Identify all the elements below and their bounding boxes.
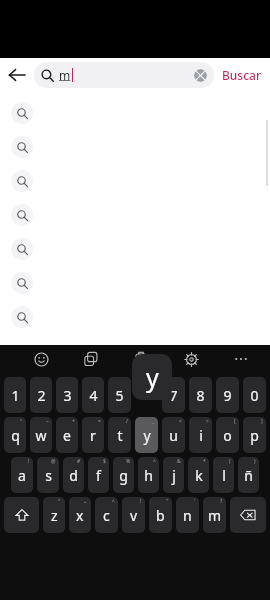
staticText: ! — [28, 458, 30, 465]
button[interactable]: Clipboard — [128, 346, 154, 372]
button[interactable]: / — [108, 417, 131, 453]
button[interactable]: ' — [176, 497, 199, 533]
button[interactable]: ⌃ — [43, 497, 65, 533]
button[interactable]: 1 — [4, 377, 26, 413]
button[interactable]: Search suggestion — [0, 164, 270, 198]
staticText: ~ — [46, 418, 49, 425]
staticText: 4 — [89, 386, 98, 405]
staticText: i — [199, 426, 203, 445]
staticText: ^ — [153, 458, 156, 465]
staticText: a — [18, 466, 26, 485]
button[interactable]: 0 — [243, 377, 266, 413]
button[interactable]: & — [163, 457, 184, 493]
staticText: o — [223, 426, 232, 445]
staticText: ⌄ — [83, 498, 88, 504]
button[interactable]: ? — [203, 497, 226, 533]
button[interactable]: ( — [213, 457, 234, 493]
button[interactable]: _ — [135, 417, 158, 453]
button[interactable]: ^ — [95, 497, 118, 533]
staticText: ! — [140, 498, 142, 505]
button[interactable]: Search suggestion — [0, 300, 270, 334]
button[interactable]: # — [63, 457, 84, 493]
button[interactable]: Search suggestion — [0, 96, 270, 130]
staticText: m — [59, 67, 71, 83]
staticText: > — [206, 418, 209, 425]
button[interactable]: < — [162, 417, 185, 453]
button[interactable]: ^ — [138, 457, 159, 493]
button[interactable]: Clear — [194, 69, 207, 82]
staticText: x — [76, 506, 84, 525]
button[interactable]: 4 — [82, 377, 104, 413]
button[interactable]: Emoji — [28, 346, 54, 372]
staticText: n — [183, 506, 192, 525]
staticText: [ — [234, 418, 236, 425]
button[interactable]: 3 — [56, 377, 78, 413]
button[interactable]: = — [82, 417, 104, 453]
button[interactable]: ) — [238, 457, 259, 493]
button[interactable]: Shift — [4, 497, 39, 533]
button[interactable]: ° — [4, 417, 26, 453]
button[interactable]: 8 — [189, 377, 212, 413]
staticText: w — [35, 426, 47, 445]
staticText: ( — [229, 458, 231, 465]
staticText: f — [96, 466, 101, 485]
staticText: ^ — [112, 498, 115, 505]
button[interactable]: Search suggestion — [0, 266, 270, 300]
button[interactable]: 2 — [30, 377, 52, 413]
button[interactable]: $ — [88, 457, 109, 493]
button[interactable]: Search suggestion — [0, 130, 270, 164]
button[interactable]: 5 — [108, 377, 131, 413]
staticText: r — [90, 426, 96, 445]
staticText: m — [208, 506, 222, 525]
button[interactable]: 9 — [216, 377, 239, 413]
button[interactable]: ~ — [30, 417, 52, 453]
staticText: h — [144, 466, 153, 485]
staticText: j — [172, 466, 176, 485]
staticText: ] — [261, 418, 263, 425]
button[interactable]: Settings — [178, 346, 204, 372]
button[interactable]: @ — [37, 457, 59, 493]
button[interactable]: m — [34, 62, 214, 88]
staticText: 8 — [196, 386, 205, 405]
button[interactable]: Buscar — [214, 58, 270, 92]
button[interactable]: ] — [243, 417, 266, 453]
button[interactable]: * — [188, 457, 209, 493]
button[interactable]: Back — [0, 58, 34, 92]
button[interactable]: Search suggestion — [0, 232, 270, 266]
button[interactable]: % — [113, 457, 134, 493]
staticText: q — [11, 426, 20, 445]
staticText: 0 — [250, 386, 259, 405]
button[interactable]: ! — [11, 457, 33, 493]
staticText: + — [72, 418, 75, 425]
staticText: y — [143, 426, 151, 445]
staticText: d — [69, 466, 78, 485]
button[interactable]: Search suggestion — [0, 198, 270, 232]
staticText: y — [146, 360, 159, 394]
button[interactable]: ⌄ — [69, 497, 91, 533]
staticText: 3 — [63, 386, 72, 405]
staticText: g — [119, 466, 128, 485]
button[interactable]: " — [149, 497, 172, 533]
staticText: % — [126, 458, 131, 465]
button[interactable]: Translate — [78, 346, 104, 372]
button[interactable]: + — [56, 417, 78, 453]
staticText: l — [222, 466, 226, 485]
button[interactable] — [135, 377, 158, 413]
staticText: e — [63, 426, 71, 445]
button[interactable]: 7 — [162, 377, 185, 413]
staticText: 5 — [115, 386, 124, 405]
staticText: ' — [194, 498, 196, 505]
staticText: # — [77, 458, 81, 465]
staticText: s — [45, 466, 52, 485]
staticText: = — [98, 418, 101, 425]
button[interactable]: ! — [122, 497, 145, 533]
staticText: 2 — [37, 386, 46, 405]
button[interactable]: [ — [216, 417, 239, 453]
staticText: _ — [152, 418, 155, 425]
staticText: " — [166, 498, 169, 505]
button[interactable]: More options — [228, 346, 254, 372]
button[interactable]: > — [189, 417, 212, 453]
button[interactable]: Backspace — [230, 497, 266, 533]
staticText: ñ — [244, 466, 253, 485]
staticText: ) — [254, 458, 256, 465]
